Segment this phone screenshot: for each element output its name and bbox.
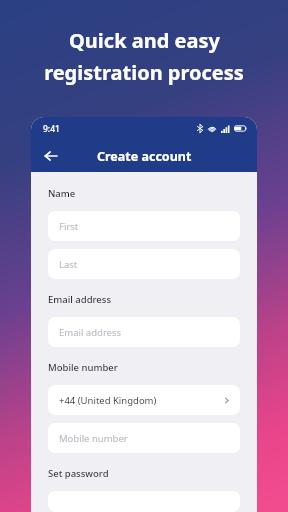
staticText: Mobile number <box>48 361 118 374</box>
staticText: Set password <box>48 467 109 480</box>
staticText: Email address <box>59 326 231 339</box>
button[interactable]: +44 (United Kingdom) <box>48 385 240 415</box>
staticText: Last <box>59 258 231 271</box>
staticText: Create account <box>97 148 192 165</box>
button[interactable]: Mobile number <box>48 423 240 453</box>
staticText: Mobile number <box>59 432 231 445</box>
button[interactable]: Last <box>48 249 240 279</box>
button[interactable]: First <box>48 211 240 241</box>
staticText: Name <box>48 187 76 200</box>
staticText: Email address <box>48 293 112 306</box>
staticText: First <box>59 220 231 233</box>
staticText: +44 (United Kingdom) <box>59 394 222 407</box>
button[interactable]: Email address <box>48 317 240 347</box>
staticText: Quick and easy <box>69 27 220 54</box>
staticText: registration process <box>44 59 244 86</box>
staticText: 9:41 <box>43 123 60 135</box>
button[interactable]: Back <box>40 145 62 167</box>
